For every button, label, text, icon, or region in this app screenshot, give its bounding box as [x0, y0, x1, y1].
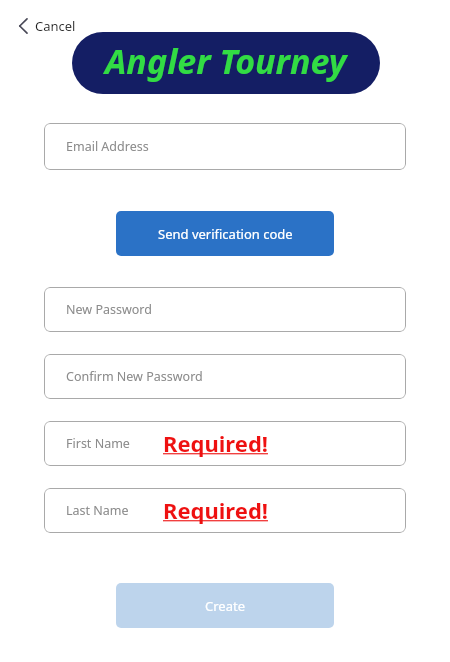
staticText: Confirm New Password	[66, 368, 203, 385]
button[interactable]: Confirm New Password	[44, 354, 406, 399]
staticText: Cancel	[35, 17, 76, 35]
staticText: Required!	[163, 428, 268, 458]
staticText: New Password	[66, 301, 152, 318]
button[interactable]: Email Address	[44, 123, 406, 170]
button[interactable]: First Name	[44, 421, 406, 466]
button[interactable]: Last Name	[44, 488, 406, 533]
staticText: Required!	[163, 495, 268, 525]
staticText: Create	[205, 597, 245, 615]
staticText: First Name	[66, 435, 130, 452]
staticText: Email Address	[66, 138, 149, 155]
other: Back	[18, 18, 29, 34]
staticText: Last Name	[66, 502, 129, 519]
button[interactable]: New Password	[44, 287, 406, 332]
staticText: Angler Tourney	[105, 38, 347, 84]
staticText: Send verification code	[158, 225, 293, 243]
button[interactable]: Send verification code	[116, 211, 334, 256]
button[interactable]: Create	[116, 583, 334, 628]
button[interactable]: Back	[14, 13, 80, 39]
